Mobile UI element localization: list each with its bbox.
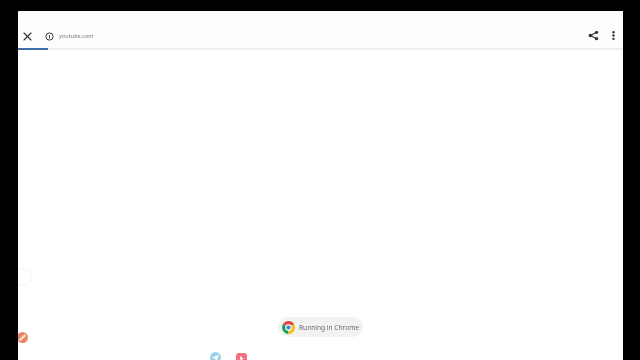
button[interactable]: App shortcut: [18, 332, 28, 343]
staticText: Running in Chrome: [299, 323, 360, 332]
button[interactable]: More options: [605, 27, 621, 43]
button[interactable]: Site information: [41, 28, 57, 44]
button[interactable]: Telegram: [210, 352, 221, 360]
button[interactable]: Running in Chrome: [278, 317, 363, 337]
button[interactable]: YouTube: [236, 353, 247, 360]
button[interactable]: Close: [19, 28, 35, 44]
staticText: youtube.com: [59, 32, 94, 40]
button[interactable]: Share: [585, 27, 602, 44]
